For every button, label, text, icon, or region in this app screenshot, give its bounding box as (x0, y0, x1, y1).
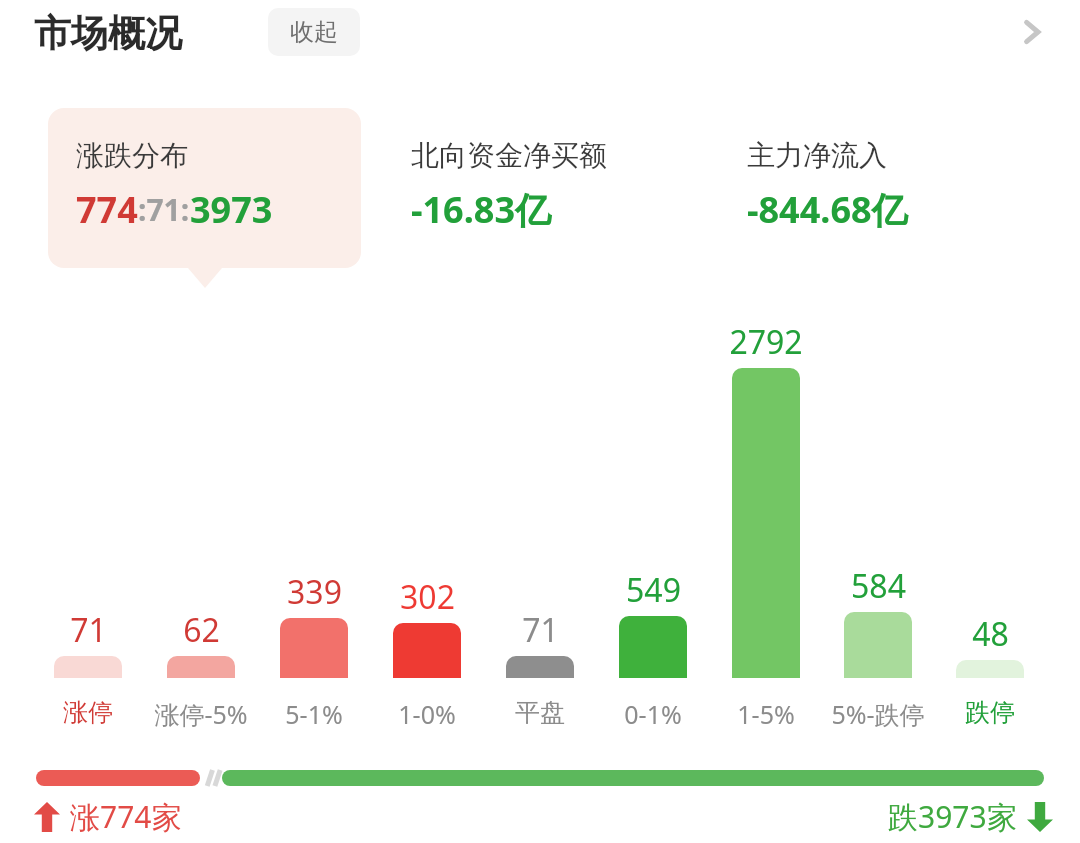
staticText: 71 (70, 608, 107, 652)
staticText: 339 (287, 570, 342, 614)
staticText: 48 (972, 612, 1009, 656)
staticText: 3973 (190, 185, 273, 234)
staticText: 涨停 (63, 697, 113, 728)
staticText: 774 (76, 185, 138, 234)
staticText: 收起 (290, 17, 338, 47)
staticText: 涨跌分布 (76, 138, 188, 173)
button[interactable]: 5%-跌停 (808, 697, 948, 731)
staticText: 71 (522, 608, 559, 652)
button[interactable]: 涨774家 (34, 796, 182, 837)
button[interactable]: 主力净流入 (719, 108, 1032, 268)
staticText: 0-1% (624, 697, 682, 731)
staticText: 跌停 (965, 697, 1015, 728)
staticText: 平盘 (515, 697, 565, 728)
staticText: 62 (183, 608, 220, 652)
button[interactable]: 5-1% (244, 697, 384, 731)
button[interactable]: 市场概况 (30, 6, 186, 61)
staticText: -16.83亿 (411, 185, 552, 234)
staticText: 2792 (729, 320, 803, 364)
staticText: 549 (626, 568, 681, 612)
staticText: 市场概况 (34, 10, 182, 57)
button[interactable]: 平盘 (470, 697, 610, 728)
staticText: 涨774家 (70, 796, 182, 837)
staticText: -844.68亿 (747, 185, 908, 234)
button[interactable]: More (1008, 8, 1056, 56)
staticText: 北向资金净买额 (411, 138, 607, 173)
button[interactable]: 1-0% (357, 697, 497, 731)
button[interactable]: 涨停 (18, 697, 158, 728)
button[interactable]: 1-5% (696, 697, 836, 731)
button[interactable]: 跌3973家 (888, 796, 1053, 837)
staticText: 5%-跌停 (831, 697, 925, 731)
staticText: 584 (851, 564, 906, 608)
staticText: 涨停-5% (154, 697, 248, 731)
staticText: 1-0% (398, 697, 456, 731)
button[interactable]: 涨停-5% (131, 697, 271, 731)
staticText: :71: (138, 189, 190, 230)
staticText: 跌3973家 (888, 796, 1017, 837)
staticText: 1-5% (737, 697, 795, 731)
button[interactable]: 0-1% (583, 697, 723, 731)
button[interactable]: 收起 (268, 8, 360, 56)
staticText: 5-1% (285, 697, 343, 731)
button[interactable]: 跌停 (920, 697, 1060, 728)
staticText: 302 (400, 575, 455, 619)
button[interactable]: 涨跌分布 (48, 108, 361, 268)
staticText: 主力净流入 (747, 138, 887, 173)
button[interactable]: 北向资金净买额 (383, 108, 696, 268)
